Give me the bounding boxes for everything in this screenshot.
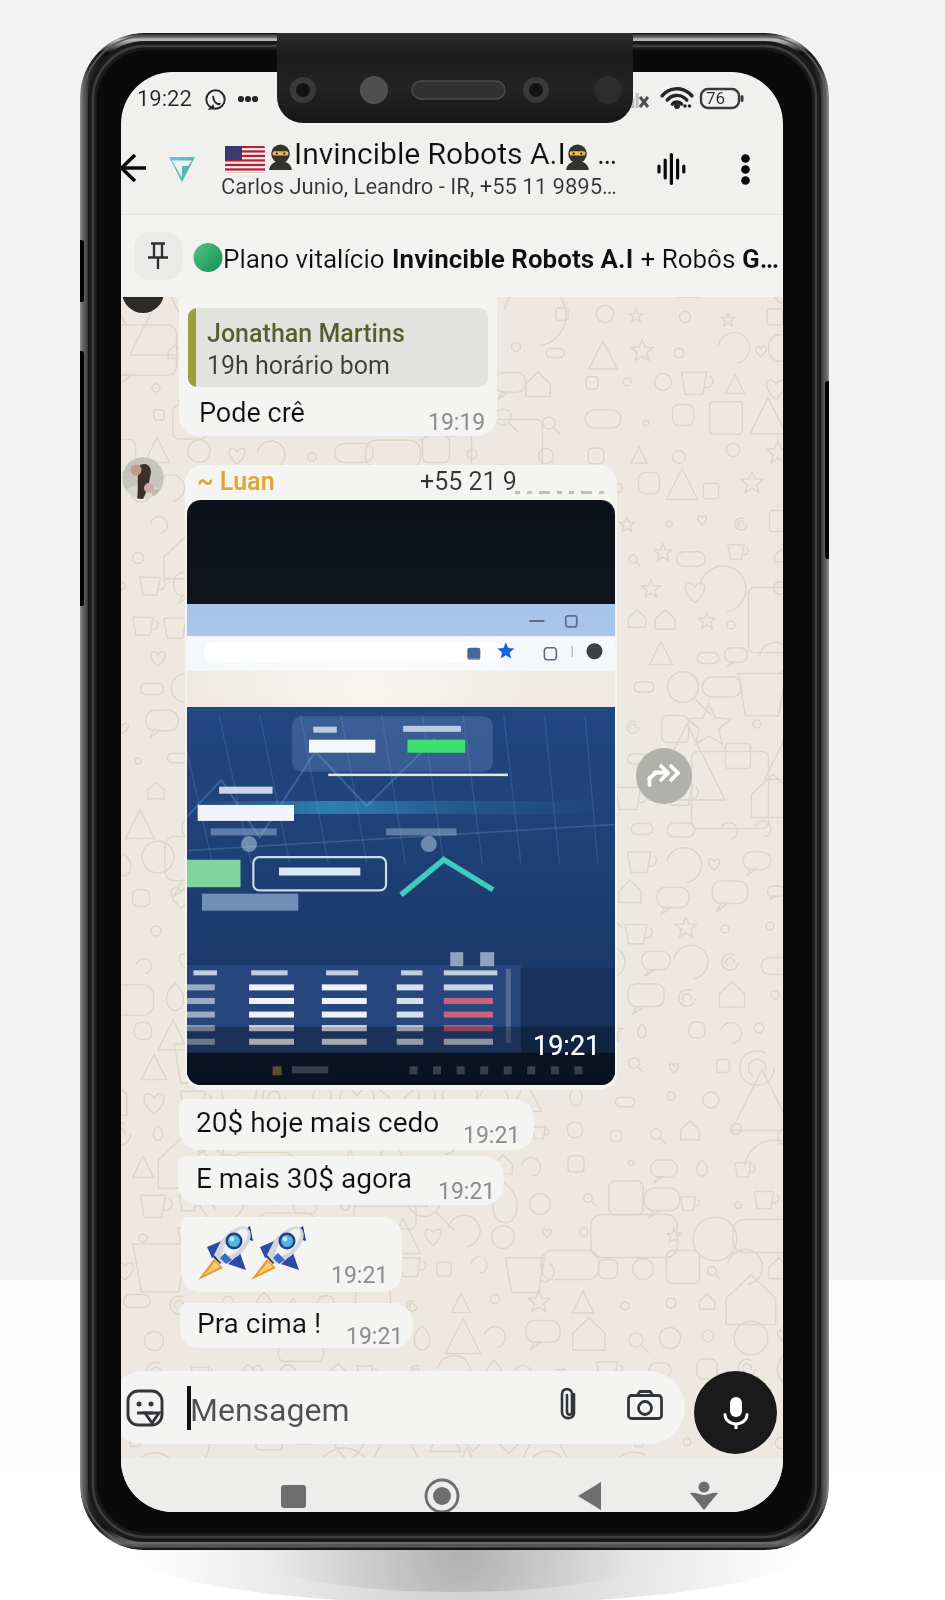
staticText: +55 21 9 bbox=[420, 467, 517, 496]
button[interactable]: Emoji bbox=[121, 1380, 173, 1436]
staticText: 19h horário bom bbox=[207, 351, 390, 380]
staticText: … bbox=[597, 136, 618, 171]
staticText: Pode crê bbox=[199, 397, 305, 429]
staticText: E mais 30$ agora bbox=[196, 1162, 413, 1195]
staticText: G… bbox=[742, 244, 779, 274]
button[interactable]: Forward bbox=[636, 748, 692, 804]
button[interactable]: Home bbox=[418, 1472, 466, 1512]
button[interactable]: ~ Luan bbox=[185, 465, 617, 1090]
staticText: Mensagem bbox=[190, 1391, 350, 1429]
button[interactable]: Emoji bbox=[121, 1371, 685, 1444]
staticText: 76 bbox=[706, 88, 726, 107]
button[interactable]: Voice call bbox=[645, 143, 697, 195]
button[interactable]: Back bbox=[566, 1472, 614, 1512]
button[interactable]: Hide keyboard bbox=[680, 1472, 728, 1512]
button[interactable]: More options bbox=[719, 143, 771, 195]
staticText: ~ Luan bbox=[197, 467, 275, 496]
button[interactable]: 19:21 bbox=[181, 1217, 402, 1292]
button[interactable]: Jonathan Martins bbox=[179, 297, 497, 436]
button[interactable]: E mais 30$ agora bbox=[178, 1156, 504, 1205]
staticText: Jonathan Martins bbox=[207, 319, 405, 348]
staticText: 19:19 bbox=[428, 409, 486, 436]
staticText: Invincible Robots A.I bbox=[392, 244, 634, 274]
button[interactable]: Camera bbox=[622, 1382, 668, 1428]
button[interactable]: Pra cima ! bbox=[180, 1303, 413, 1348]
button[interactable]: Record voice message bbox=[694, 1371, 777, 1454]
button[interactable]: Plano vitalício bbox=[121, 215, 783, 297]
staticText: Pra cima ! bbox=[197, 1307, 322, 1340]
button[interactable]: Recent apps bbox=[269, 1472, 317, 1512]
staticText: Plano vitalício bbox=[223, 244, 392, 274]
staticText: 19:22 bbox=[137, 86, 192, 112]
staticText: 19:21 bbox=[438, 1178, 496, 1205]
staticText: Carlos Junio, Leandro - IR, +55 11 9895… bbox=[221, 174, 617, 200]
button[interactable]: Back bbox=[121, 142, 160, 194]
staticText: 19:21 bbox=[533, 1030, 601, 1062]
button[interactable]: 20$ hoje mais cedo bbox=[179, 1099, 534, 1150]
staticText: Invincible Robots A.I bbox=[294, 136, 566, 171]
staticText: + Robôs bbox=[634, 244, 742, 274]
button[interactable]: Attach file bbox=[547, 1381, 593, 1427]
staticText: 19:21 bbox=[331, 1262, 389, 1289]
staticText: 19:21 bbox=[346, 1323, 404, 1348]
staticText: 19:21 bbox=[463, 1122, 521, 1149]
staticText: 20$ hoje mais cedo bbox=[196, 1106, 440, 1139]
